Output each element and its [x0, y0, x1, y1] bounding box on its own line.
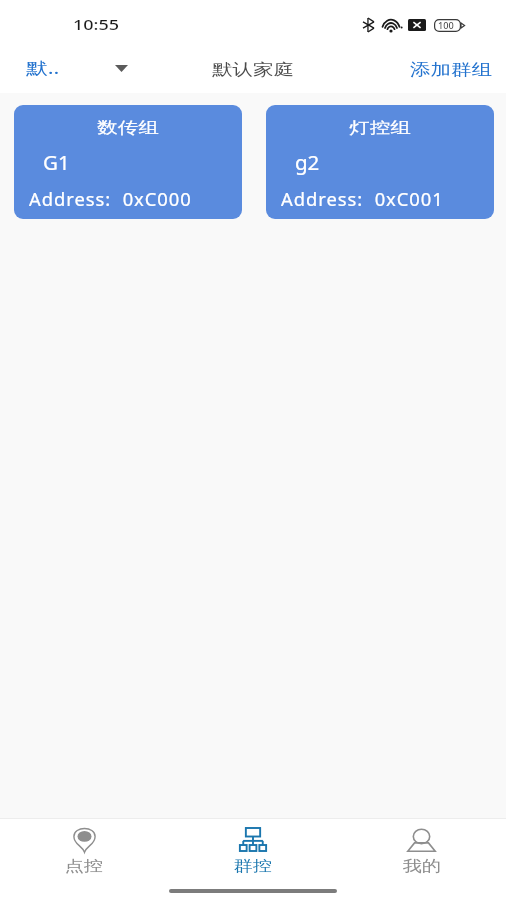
staticText: 默认家庭 — [212, 60, 294, 80]
staticText: 默.. — [26, 56, 61, 79]
other: Select home — [115, 65, 128, 72]
button[interactable]: 我的 — [337, 819, 506, 876]
staticText: 添加群组 — [410, 60, 492, 80]
button[interactable]: 数传组 — [14, 105, 242, 219]
staticText: 100 — [438, 20, 454, 31]
staticText: 点控 — [65, 857, 103, 876]
staticText: 数传组 — [97, 118, 159, 138]
staticText: g2 — [295, 150, 320, 176]
button[interactable]: 群控 — [168, 819, 337, 876]
button[interactable]: 点控 — [0, 819, 168, 876]
button[interactable]: 默.. — [0, 47, 142, 93]
staticText: Address: 0xC000 — [29, 187, 192, 212]
staticText: 我的 — [403, 857, 441, 876]
staticText: G1 — [43, 150, 70, 176]
staticText: 群控 — [234, 857, 272, 876]
staticText: 10:55 — [73, 14, 120, 34]
staticText: 灯控组 — [349, 118, 411, 138]
button[interactable]: 添加群组 — [405, 47, 506, 93]
button[interactable]: 灯控组 — [266, 105, 494, 219]
staticText: Address: 0xC001 — [281, 187, 444, 212]
